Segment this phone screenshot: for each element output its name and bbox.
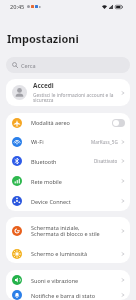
button[interactable]: Modalità aereo — [112, 119, 125, 127]
button[interactable]: Bluetooth — [6, 151, 130, 171]
other: Apri — [121, 251, 125, 257]
staticText: Disattivato — [94, 158, 118, 164]
staticText: Suoni e vibrazione — [31, 277, 121, 284]
staticText: Accedi — [33, 81, 54, 90]
other: Apri — [121, 198, 125, 204]
button[interactable]: Device Connect — [6, 191, 130, 211]
staticText: 20:45 — [10, 3, 25, 11]
staticText: Gestisci le informazioni account e la si… — [33, 92, 114, 104]
button[interactable]: Notifiche e barra di stato — [6, 290, 130, 300]
button[interactable]: Schermo e luminosità — [6, 244, 130, 263]
button[interactable]: Cerca — [6, 57, 130, 73]
button[interactable]: Accedi — [6, 79, 130, 106]
staticText: MarKuss_5G — [91, 139, 118, 145]
staticText: Cerca — [21, 62, 36, 69]
staticText: Schermata iniziale, Schermata di blocco … — [31, 224, 121, 238]
staticText: Impostazioni — [7, 31, 79, 46]
other: Apri — [121, 228, 125, 234]
staticText: Schermo e luminosità — [31, 250, 121, 257]
button[interactable]: Rete mobile — [6, 171, 130, 191]
other: Apri — [121, 90, 125, 96]
other: Apri — [121, 178, 125, 184]
button[interactable]: Schermata iniziale, Schermata di blocco … — [6, 217, 130, 244]
button[interactable]: Modalità aereo — [6, 113, 130, 132]
button[interactable]: Suoni e vibrazione — [6, 270, 130, 290]
staticText: Wi-Fi — [31, 138, 91, 145]
staticText: Bluetooth — [31, 158, 94, 165]
staticText: Notifiche e barra di stato — [31, 292, 121, 299]
other: Apri — [121, 277, 125, 283]
other: Apri — [121, 158, 125, 164]
staticText: Modalità aereo — [31, 119, 112, 126]
staticText: Device Connect — [31, 198, 121, 205]
button[interactable]: Wi-Fi — [6, 132, 130, 151]
other: Apri — [121, 292, 125, 298]
other: Apri — [121, 139, 125, 145]
staticText: Rete mobile — [31, 178, 121, 185]
